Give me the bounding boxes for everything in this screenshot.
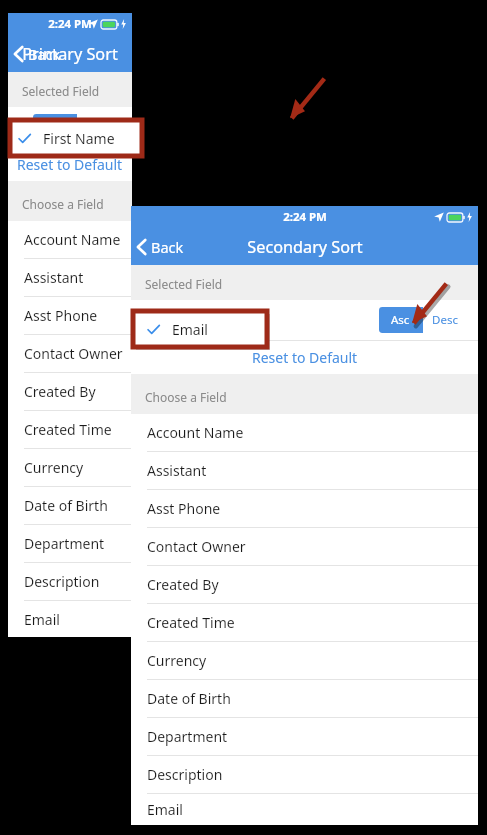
button[interactable]: Description [131, 756, 478, 794]
button[interactable]: Desc [423, 307, 466, 333]
button[interactable]: Currency [8, 449, 132, 487]
staticText: Created By [147, 575, 219, 594]
button[interactable]: Asc [33, 114, 76, 140]
staticText: First Name [43, 129, 115, 148]
button[interactable]: Reset to Default [131, 341, 478, 374]
staticText: Created Time [147, 613, 235, 632]
button[interactable]: Asst Phone [8, 297, 132, 335]
staticText: Description [147, 765, 223, 784]
button[interactable]: Date of Birth [131, 680, 478, 718]
button[interactable]: Assistant [8, 259, 132, 297]
staticText: Asst Phone [24, 306, 98, 325]
button[interactable]: Created By [8, 373, 132, 411]
staticText: Created By [24, 382, 96, 401]
staticText: Desc [86, 119, 112, 135]
staticText: Selected Field [22, 83, 100, 99]
staticText: Description [24, 572, 100, 591]
button[interactable]: Contact Owner [8, 335, 132, 373]
button[interactable]: Date of Birth [8, 487, 132, 525]
staticText: Department [147, 727, 228, 746]
staticText: Asc [391, 312, 410, 328]
button[interactable]: Account Name [131, 414, 478, 452]
staticText: Account Name [24, 230, 121, 249]
staticText: 2:24 PM [283, 209, 327, 225]
button[interactable]: Currency [131, 642, 478, 680]
button[interactable]: Desc [77, 114, 120, 140]
button[interactable]: Department [131, 718, 478, 756]
staticText: Contact Owner [24, 344, 123, 363]
staticText: Date of Birth [147, 689, 231, 708]
staticText: 2:24 PM [48, 16, 92, 32]
staticText: Asc [45, 119, 64, 135]
button[interactable]: Back [8, 40, 71, 68]
staticText: Email [147, 800, 183, 819]
button[interactable]: Back [131, 233, 194, 261]
staticText: Back [151, 237, 184, 257]
button[interactable]: Email [8, 601, 132, 637]
staticText: Assistant [147, 461, 207, 480]
button[interactable]: Contact Owner [131, 528, 478, 566]
staticText: Choose a Field [145, 389, 227, 405]
button[interactable]: Assistant [131, 452, 478, 490]
button[interactable]: Email [131, 794, 478, 825]
staticText: Contact Owner [147, 537, 246, 556]
button[interactable]: Asc [379, 307, 422, 333]
staticText: Selected Field [145, 276, 223, 292]
staticText: Secondary Sort [247, 236, 363, 258]
button[interactable]: Created Time [8, 411, 132, 449]
staticText: Asst Phone [147, 499, 221, 518]
button[interactable]: Email [131, 300, 478, 340]
button[interactable]: Department [8, 525, 132, 563]
staticText: Account Name [147, 423, 244, 442]
staticText: Department [24, 534, 105, 553]
staticText: Reset to Default [252, 348, 358, 367]
button[interactable]: First Name [8, 107, 132, 147]
button[interactable]: Created Time [131, 604, 478, 642]
staticText: Email [172, 320, 208, 339]
button[interactable]: Description [8, 563, 132, 601]
staticText: Back [28, 44, 61, 64]
staticText: Currency [24, 458, 84, 477]
staticText: Date of Birth [24, 496, 108, 515]
staticText: Email [24, 610, 60, 629]
staticText: Created Time [24, 420, 112, 439]
staticText: Assistant [24, 268, 84, 287]
staticText: Reset to Default [17, 155, 123, 174]
button[interactable]: Created By [131, 566, 478, 604]
staticText: Primary Sort [22, 43, 118, 65]
staticText: First Name [51, 118, 123, 137]
staticText: Desc [432, 312, 458, 328]
staticText: Email [174, 311, 210, 330]
button[interactable]: Reset to Default [8, 148, 132, 181]
button[interactable]: Account Name [8, 221, 132, 259]
staticText: Choose a Field [22, 196, 104, 212]
staticText: Currency [147, 651, 207, 670]
button[interactable]: Asst Phone [131, 490, 478, 528]
